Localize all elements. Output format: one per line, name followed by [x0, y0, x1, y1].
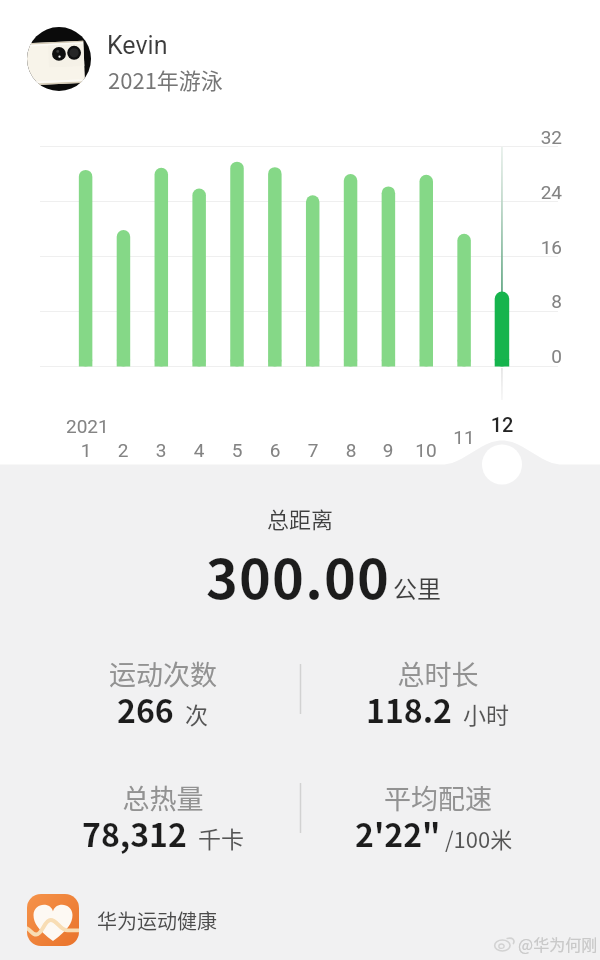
staticText: 7	[291, 439, 335, 461]
button[interactable]: Huawei Health	[27, 894, 217, 946]
button[interactable]: 1月	[67, 140, 105, 368]
staticText: 总热量	[13, 778, 313, 817]
staticText: 0	[530, 345, 562, 367]
button[interactable]: 4月	[180, 140, 218, 368]
staticText: 118.2	[366, 686, 452, 732]
button[interactable]: 总距离	[0, 502, 600, 610]
staticText: 次	[185, 697, 208, 730]
staticText: 总时长	[288, 654, 588, 693]
button[interactable]: 运动次数	[13, 654, 313, 728]
staticText: 6	[253, 439, 297, 461]
staticText: /100米	[445, 822, 513, 854]
button[interactable]: 12月	[483, 140, 521, 368]
button[interactable]: Profile photo	[27, 27, 277, 91]
staticText: 10	[404, 439, 448, 461]
button[interactable]: 平均配速	[288, 778, 588, 852]
staticText: 2021	[66, 415, 109, 437]
staticText: 运动次数	[13, 654, 313, 693]
staticText: 3	[139, 439, 183, 461]
staticText: 32	[530, 126, 562, 148]
staticText: 平均配速	[288, 778, 588, 817]
staticText: 1	[64, 439, 108, 461]
staticText: 78,312	[82, 810, 187, 856]
staticText: 8	[530, 290, 562, 312]
staticText: @华为何刚	[518, 932, 598, 955]
staticText: 总距离	[0, 502, 600, 534]
button[interactable]: 2月	[105, 140, 143, 368]
button[interactable]: 11月	[445, 140, 483, 368]
staticText: 266	[117, 686, 174, 732]
button[interactable]: 9月	[369, 140, 407, 368]
staticText: 2021年游泳	[108, 63, 223, 95]
staticText: 16	[530, 236, 562, 258]
staticText: 12	[480, 413, 524, 436]
staticText: 11	[442, 426, 486, 448]
staticText: 2	[101, 439, 145, 461]
staticText: Kevin	[107, 31, 168, 60]
button[interactable]: 10月	[407, 140, 445, 368]
staticText: 公里	[393, 570, 441, 605]
staticText: 4	[177, 439, 221, 461]
staticText: 9	[366, 439, 410, 461]
staticText: 2'22"	[355, 810, 441, 856]
staticText: 8	[329, 439, 373, 461]
other: Huawei Health	[27, 894, 79, 946]
staticText: 5	[215, 439, 259, 461]
staticText: 华为运动健康	[97, 906, 217, 935]
staticText: 300.00	[206, 536, 391, 614]
staticText: 24	[530, 181, 562, 203]
other: Profile photo	[27, 27, 91, 91]
staticText: 千卡	[198, 821, 244, 854]
button[interactable]: 5月	[218, 140, 256, 368]
button[interactable]: 3月	[142, 140, 180, 368]
button[interactable]: 6月	[256, 140, 294, 368]
other: Weibo	[494, 933, 516, 955]
button[interactable]: 总热量	[13, 778, 313, 852]
staticText: 小时	[463, 697, 509, 730]
button[interactable]: 总时长	[288, 654, 588, 728]
button[interactable]: 7月	[294, 140, 332, 368]
button[interactable]: 8月	[332, 140, 370, 368]
